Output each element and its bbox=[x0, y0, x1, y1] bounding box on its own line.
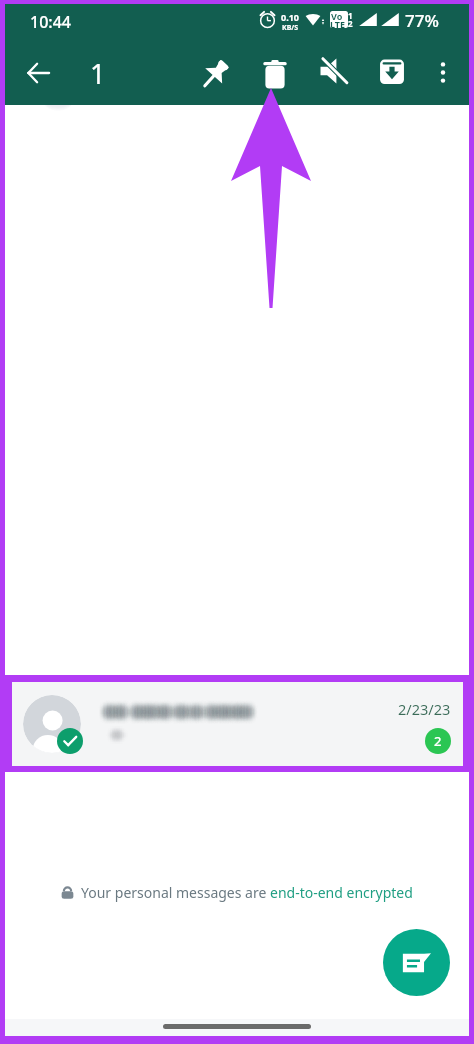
staticText: 2 bbox=[434, 732, 442, 750]
button[interactable]: Delete bbox=[251, 50, 299, 98]
staticText: Vo bbox=[331, 11, 343, 22]
staticText: LTE bbox=[330, 18, 346, 28]
button[interactable]: Archive bbox=[368, 47, 416, 95]
staticText: end-to-end encrypted bbox=[270, 883, 413, 902]
staticText: KB/S bbox=[282, 23, 299, 33]
button[interactable]: 2/23/23 bbox=[12, 682, 463, 766]
staticText: 2 bbox=[348, 18, 353, 29]
staticText: 2/23/23 bbox=[398, 699, 451, 719]
staticText: 1 bbox=[348, 10, 353, 21]
staticText: 77% bbox=[405, 9, 439, 32]
button[interactable]: Back bbox=[14, 49, 62, 97]
button[interactable]: Mute notifications bbox=[310, 47, 358, 95]
button[interactable]: Pin bbox=[191, 50, 239, 98]
staticText: Your personal messages are bbox=[81, 883, 270, 902]
staticText: 1 bbox=[90, 55, 106, 92]
button[interactable]: More options bbox=[419, 48, 467, 96]
button[interactable]: New chat bbox=[383, 929, 450, 996]
staticText: 10:44 bbox=[30, 11, 71, 33]
staticText: 0.10 bbox=[281, 11, 299, 23]
